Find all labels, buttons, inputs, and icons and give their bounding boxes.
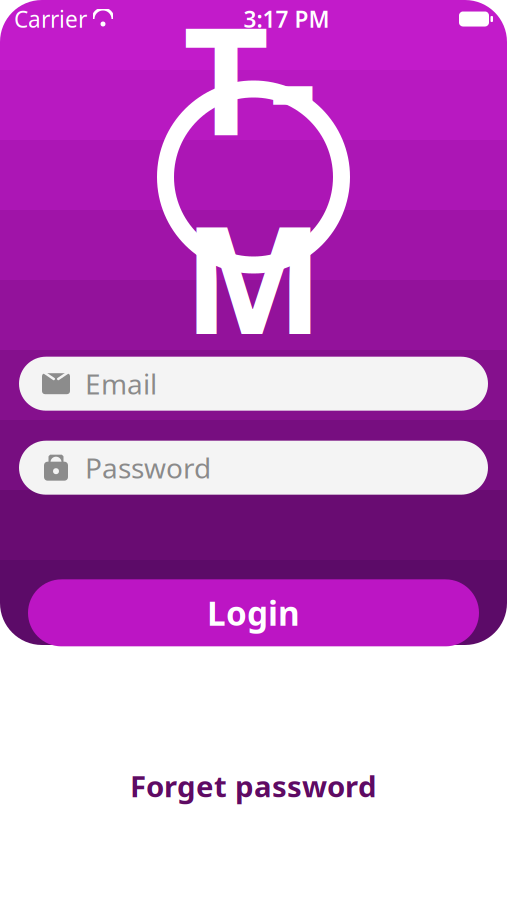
staticText: Email — [85, 365, 157, 402]
button[interactable]: Login — [28, 579, 479, 646]
staticText: Password — [85, 449, 211, 486]
staticText: Carrier — [14, 4, 87, 34]
staticText: Forget password — [130, 766, 377, 805]
button[interactable]: Forget password — [114, 756, 393, 815]
staticText: TM — [183, 0, 324, 375]
staticText: 3:17 PM — [243, 4, 329, 34]
staticText: Login — [207, 591, 300, 635]
